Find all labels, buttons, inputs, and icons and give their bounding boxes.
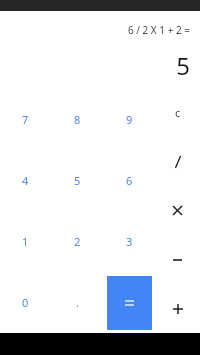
button[interactable]: 5	[51, 150, 103, 211]
staticText: 0	[22, 295, 29, 310]
button[interactable]: 0	[0, 272, 51, 333]
button[interactable]: 8	[51, 88, 103, 150]
button[interactable]: Divide	[155, 137, 200, 186]
staticText: 6	[126, 173, 133, 188]
staticText: 1	[22, 234, 29, 249]
staticText: 4	[22, 173, 29, 188]
button[interactable]: Clear	[155, 88, 200, 137]
staticText: 2	[74, 234, 81, 249]
button[interactable]: Subtract	[155, 235, 200, 284]
staticText: 9	[126, 112, 133, 127]
button[interactable]: 7	[0, 88, 51, 150]
button[interactable]: 6	[103, 150, 155, 211]
staticText: 5	[74, 173, 81, 188]
button[interactable]: 2	[51, 211, 103, 272]
staticText: c	[175, 105, 181, 120]
button[interactable]: 3	[103, 211, 155, 272]
button[interactable]: Add	[155, 284, 200, 333]
staticText: 7	[22, 112, 29, 127]
staticText: 3	[126, 234, 133, 249]
button[interactable]: 1	[0, 211, 51, 272]
button[interactable]: Multiply	[155, 186, 200, 235]
button[interactable]: .	[51, 272, 103, 333]
staticText: .	[76, 295, 79, 310]
staticText: 8	[74, 112, 81, 127]
staticText: 6 / 2 X 1 + 2 =	[127, 23, 190, 37]
button[interactable]: 9	[103, 88, 155, 150]
button[interactable]: Equals	[107, 276, 152, 330]
staticText: 5	[176, 49, 190, 82]
button[interactable]: 4	[0, 150, 51, 211]
